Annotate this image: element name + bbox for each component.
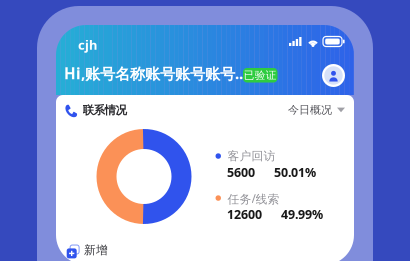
staticText: Hi,账号名称账号账号账号.. — [64, 63, 243, 84]
staticText: 5600 — [227, 164, 255, 181]
staticText: 联系情况 — [82, 103, 126, 117]
button[interactable]: 账号 — [322, 64, 345, 87]
staticText: 任务/线索 — [227, 191, 279, 207]
staticText: cjh — [78, 36, 97, 54]
staticText: 今日概况 — [288, 103, 332, 117]
button[interactable]: 今日概况 — [288, 103, 345, 117]
staticText: 客户回访 — [227, 149, 275, 164]
staticText: 已验证 — [244, 69, 277, 82]
staticText: 新增 — [84, 243, 108, 257]
staticText: 12600 — [227, 206, 262, 223]
button[interactable]: 新增 — [56, 237, 354, 261]
staticText: 50.01% — [274, 164, 316, 181]
staticText: 49.99% — [281, 206, 323, 223]
